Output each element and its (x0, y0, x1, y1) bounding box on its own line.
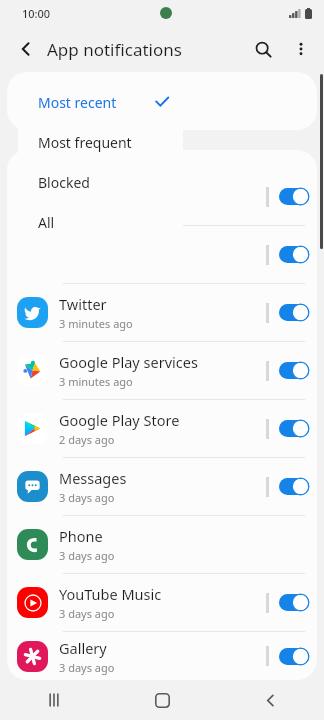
staticText: Twitter (59, 294, 107, 314)
button[interactable]: YouTube Music (7, 574, 317, 631)
button[interactable]: Phone (7, 516, 317, 573)
button[interactable]: Gallery (7, 632, 317, 680)
button[interactable]: Home (108, 680, 216, 720)
staticText: YouTube Music (59, 584, 162, 604)
staticText: 3 minutes ago (59, 316, 133, 331)
button[interactable]: Toggle notifications (7, 226, 317, 283)
staticText: Messages (59, 468, 127, 488)
button[interactable]: All (18, 202, 183, 242)
staticText: Google Play Store (59, 410, 180, 430)
button[interactable]: Back (216, 680, 324, 720)
button[interactable]: Back (8, 31, 44, 67)
button[interactable]: Toggle notifications (279, 648, 309, 665)
staticText: App notifications (47, 38, 182, 61)
button[interactable]: Messages (7, 458, 317, 515)
staticText: 3 days ago (59, 606, 115, 621)
button[interactable]: Google Play services (7, 342, 317, 399)
button[interactable]: Most recent (18, 82, 183, 122)
staticText: 10:00 (22, 6, 51, 21)
staticText: 3 days ago (59, 490, 115, 505)
button[interactable]: Recent apps (0, 680, 108, 720)
button[interactable]: Google Play Store (7, 400, 317, 457)
button[interactable]: Most frequent (18, 122, 183, 162)
staticText: Most recent (38, 93, 117, 112)
button[interactable]: Blocked (18, 162, 183, 202)
staticText: All (38, 213, 55, 232)
button[interactable]: Toggle notifications (279, 304, 309, 321)
button[interactable]: Toggle notifications (279, 478, 309, 495)
staticText: 3 days ago (59, 548, 115, 563)
staticText: 3 days ago (59, 660, 115, 675)
staticText: Gallery (59, 638, 107, 658)
staticText: 2 days ago (59, 432, 115, 447)
button[interactable]: Toggle notifications (7, 168, 317, 225)
button[interactable]: Toggle notifications (279, 420, 309, 437)
button[interactable]: Search (244, 30, 282, 68)
staticText: Google Play services (59, 352, 198, 372)
button[interactable]: More options (282, 30, 320, 68)
button[interactable]: Toggle notifications (279, 246, 309, 263)
staticText: Blocked (38, 173, 90, 192)
staticText: Most frequent (38, 133, 132, 152)
button[interactable]: Toggle notifications (279, 594, 309, 611)
button[interactable]: Twitter (7, 284, 317, 341)
staticText: Phone (59, 526, 103, 546)
button[interactable]: Toggle notifications (279, 188, 309, 205)
button[interactable]: Toggle notifications (279, 362, 309, 379)
staticText: 3 minutes ago (59, 374, 133, 389)
